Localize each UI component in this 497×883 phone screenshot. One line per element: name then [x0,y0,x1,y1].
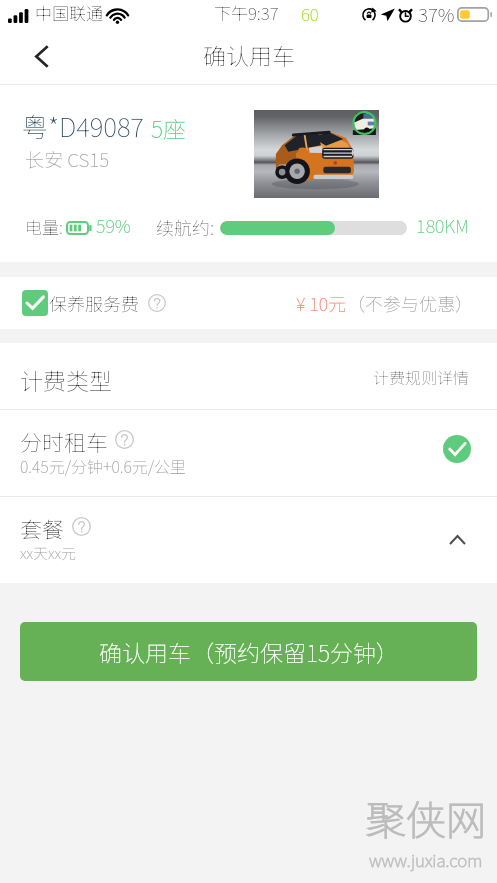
staticText: 长安 CS15 [25,145,110,173]
staticText: 37% [418,0,455,28]
button[interactable]: 保养服务费 [0,277,497,329]
staticText: 套餐 [20,512,65,544]
staticText: xx天xx元 [20,542,77,564]
staticText: （不参与优惠） [347,290,473,316]
staticText: 180KM [416,212,469,238]
button[interactable]: 收起 [442,525,472,555]
staticText: 计费规则详情 [373,365,470,388]
button[interactable]: 确认用车（预约保留15分钟） [20,622,477,681]
staticText: ¥ 10元 [296,290,347,316]
staticText: 保养服务费 [49,290,139,316]
staticText: 聚侠网 [366,789,486,847]
staticText: 电量: [25,214,63,239]
staticText: 粤*D49087 [22,107,145,145]
button[interactable]: 分时租车 [0,410,497,496]
staticText: 0.45元/分钟+0.6元/公里 [20,454,187,477]
staticText: 中国联通 [35,0,103,25]
staticText: 续航约: [156,214,215,240]
staticText: 59% [96,212,131,238]
button[interactable]: 计费规则详情 [361,357,481,395]
staticText: www.juxia.com [369,847,483,872]
staticText: 分时租车 [20,425,109,457]
staticText: 确认用车（预约保留15分钟） [99,635,399,668]
button[interactable]: 套餐 [0,497,497,583]
staticText: 60 [301,1,319,26]
staticText: 下午9:37 [214,0,279,25]
button[interactable]: 返回 [13,33,71,79]
staticText: 计费类型 [20,363,112,396]
staticText: 确认用车 [203,38,295,71]
staticText: 5座 [151,111,186,144]
